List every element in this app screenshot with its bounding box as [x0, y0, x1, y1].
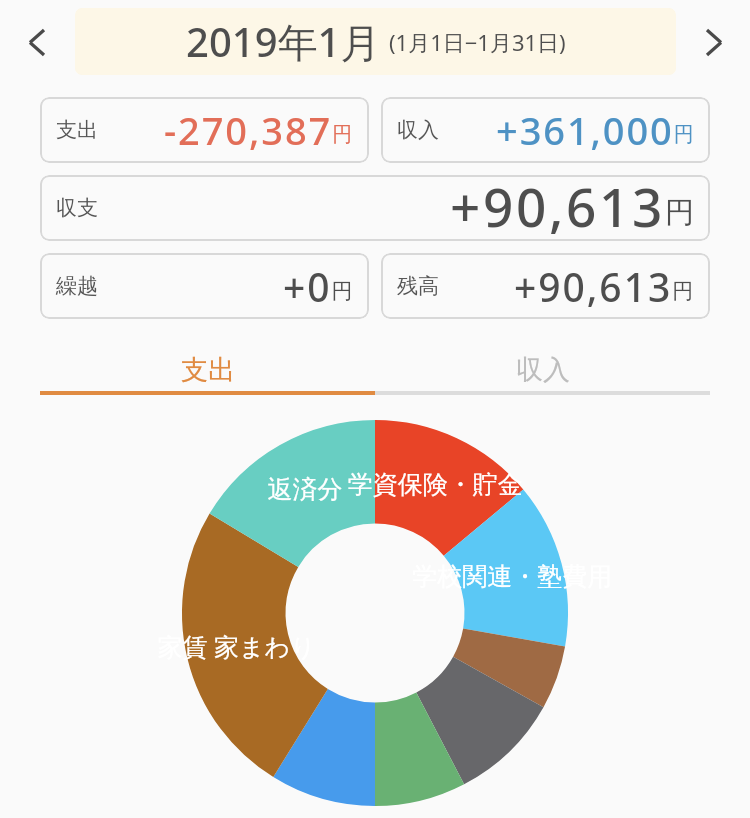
staticText: -270,387円 [164, 104, 353, 156]
button[interactable]: 支出 [40, 97, 369, 163]
button[interactable]: 繰越 [40, 253, 369, 319]
button[interactable]: 支出 [40, 335, 375, 391]
button[interactable]: Previous month [7, 12, 67, 72]
staticText: +90,613円 [450, 175, 694, 236]
staticText: 2019年1月 [186, 14, 381, 69]
staticText: 収入 [397, 117, 439, 143]
staticText: +0円 [283, 260, 353, 313]
staticText: 支出 [56, 117, 98, 143]
staticText: 収入 [516, 353, 570, 387]
button[interactable]: 残高 [381, 253, 710, 319]
button[interactable]: 収支 [40, 175, 710, 241]
staticText: +361,000円 [496, 104, 694, 156]
staticText: 繰越 [56, 273, 98, 299]
staticText: 残高 [397, 273, 439, 299]
staticText: +90,613円 [514, 260, 694, 313]
button[interactable]: 収入 [375, 335, 710, 391]
staticText: 支出 [181, 353, 235, 387]
button[interactable]: 収入 [381, 97, 710, 163]
button[interactable]: 2019年1月 [75, 8, 676, 75]
staticText: (1月1日−1月31日) [389, 27, 566, 57]
staticText: 収支 [56, 195, 98, 221]
button[interactable]: Next month [684, 12, 744, 72]
